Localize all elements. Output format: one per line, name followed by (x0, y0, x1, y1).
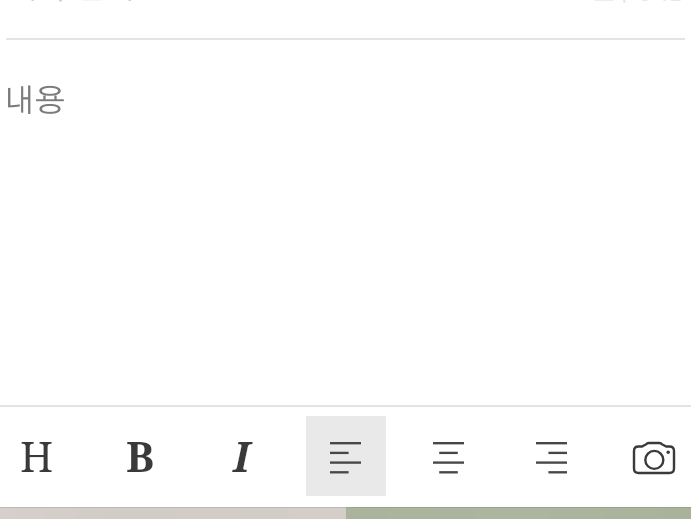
staticText: I (233, 427, 250, 484)
button[interactable]: Bold (100, 416, 180, 496)
staticText: 오후 9:12 (594, 0, 682, 5)
button[interactable]: Photo 1 (0, 507, 346, 519)
button[interactable]: Italic (203, 416, 283, 496)
staticText: B (126, 427, 155, 484)
button[interactable]: Align center (409, 416, 489, 496)
button[interactable]: Align right (512, 416, 592, 496)
button[interactable]: Camera (615, 416, 688, 496)
staticText: H (20, 427, 54, 484)
button[interactable]: 내용 (0, 40, 691, 405)
button[interactable]: Align left (306, 416, 386, 496)
button[interactable]: Photo 2 (346, 507, 691, 519)
staticText: 내용 (4, 85, 66, 117)
button[interactable]: Heading (0, 416, 77, 496)
staticText: 제목 입력 (8, 0, 135, 4)
